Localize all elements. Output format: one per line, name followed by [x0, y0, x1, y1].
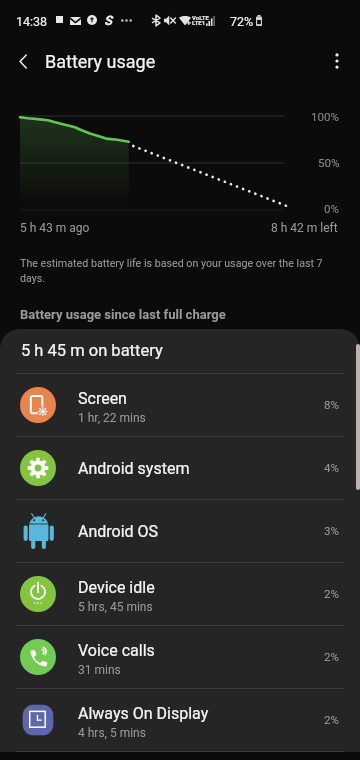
staticText: Battery usage since last full charge [20, 307, 226, 322]
button[interactable]: Always On Display [0, 689, 360, 751]
staticText: 3% [324, 524, 340, 538]
staticText: VoLTE [192, 14, 209, 21]
staticText: 14:38 [16, 14, 48, 29]
staticText: 5 hrs, 45 mins [78, 600, 153, 614]
staticText: The estimated battery life is based on y… [20, 257, 326, 284]
button[interactable]: More options [322, 46, 352, 76]
staticText: Battery usage [45, 51, 156, 72]
staticText: 8% [324, 398, 340, 412]
staticText: 31 mins [78, 663, 121, 677]
button[interactable]: Android system [0, 437, 360, 499]
staticText: 100% [311, 110, 340, 124]
staticText: Voice calls [78, 641, 155, 660]
staticText: Device idle [78, 578, 155, 597]
staticText: 2% [324, 650, 340, 664]
button[interactable]: Device idle [0, 563, 360, 625]
staticText: 1 hr, 22 mins [78, 411, 146, 425]
staticText: Android OS [78, 522, 159, 541]
staticText: 5 h 45 m on battery [21, 341, 163, 360]
staticText: 50% [318, 156, 340, 170]
button[interactable]: Back [8, 46, 38, 76]
staticText: Android system [78, 459, 190, 478]
button[interactable]: Android OS [0, 500, 360, 562]
button[interactable]: Screen [0, 374, 360, 436]
staticText: LTE1 [192, 19, 206, 26]
staticText: Screen [78, 389, 127, 408]
staticText: 0% [324, 202, 340, 216]
staticText: 8 h 42 m left [271, 221, 338, 235]
button[interactable]: Voice calls [0, 626, 360, 688]
staticText: S [104, 13, 112, 28]
staticText: 2% [324, 713, 340, 727]
staticText: 72% [230, 14, 254, 29]
staticText: 2% [324, 587, 340, 601]
staticText: 4 hrs, 5 mins [78, 726, 146, 740]
staticText: 4% [324, 461, 340, 475]
staticText: 5 h 43 m ago [20, 221, 90, 235]
staticText: Always On Display [78, 704, 209, 723]
